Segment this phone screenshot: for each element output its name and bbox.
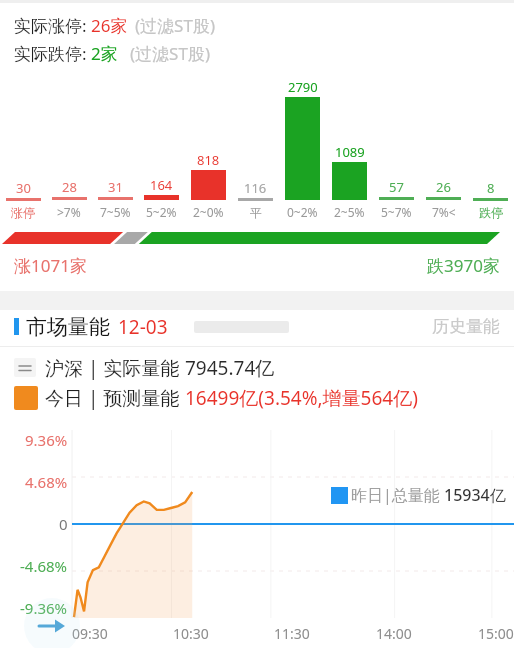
staticText: 今日 | 预测量能 <box>45 385 185 411</box>
button[interactable]: 9.36% <box>0 416 514 648</box>
staticText: 8 <box>487 179 495 197</box>
staticText: 12-03 <box>118 314 168 340</box>
staticText: 历史量能 <box>432 316 500 337</box>
staticText: 11:30 <box>274 624 310 643</box>
staticText: 5~2% <box>146 204 177 220</box>
staticText: 平 <box>250 205 262 220</box>
button[interactable]: 实际涨停: <box>14 14 514 37</box>
staticText: 116 <box>244 179 267 197</box>
button[interactable]: 展开 <box>24 598 80 648</box>
staticText: 30 <box>16 179 31 197</box>
other: 切换市场 <box>14 358 36 377</box>
staticText: (过滤ST股) <box>135 14 215 37</box>
staticText: 16499亿(3.54%,增量564亿) <box>185 385 418 411</box>
staticText: 26 <box>436 178 451 196</box>
staticText: 2家 <box>91 42 118 65</box>
staticText: 跌3970家 <box>427 254 500 277</box>
staticText: 4.68% <box>25 472 68 492</box>
staticText: 7945.74亿 <box>185 355 275 381</box>
staticText: 涨1071家 <box>14 254 87 277</box>
staticText: 沪深 | 实际量能 <box>45 355 185 381</box>
staticText: 15:00 <box>478 624 514 643</box>
staticText: -4.68% <box>20 556 68 576</box>
staticText: 1089 <box>335 143 365 161</box>
staticText: 14:00 <box>376 624 412 643</box>
staticText: 7%< <box>432 204 456 220</box>
button[interactable]: 切换市场 <box>14 354 514 381</box>
staticText: 15934亿 <box>444 484 506 506</box>
button[interactable]: 市场量能 <box>0 310 514 343</box>
staticText: 57 <box>389 178 404 196</box>
staticText: 2790 <box>288 78 318 96</box>
staticText: 0 <box>59 514 68 534</box>
staticText: >7% <box>57 204 81 220</box>
staticText: 2~0% <box>193 204 224 220</box>
staticText: 5~7% <box>381 204 412 220</box>
staticText: 7~5% <box>100 204 131 220</box>
staticText: 涨停 <box>11 205 35 220</box>
staticText: 跌停 <box>479 205 503 220</box>
staticText: (过滤ST股) <box>130 42 210 65</box>
staticText: 实际跌停: <box>14 42 91 65</box>
button[interactable] <box>0 230 514 248</box>
staticText: 10:30 <box>173 624 209 643</box>
staticText: 28 <box>62 178 77 196</box>
staticText: 市场量能 <box>26 314 110 340</box>
staticText: 26家 <box>91 14 128 37</box>
staticText: -9.36% <box>20 598 68 618</box>
staticText: 昨日|总量能 <box>351 484 444 506</box>
staticText: 818 <box>197 151 220 169</box>
staticText: 31 <box>108 178 123 196</box>
button[interactable]: 30 <box>0 74 514 222</box>
staticText: 2~5% <box>334 204 365 220</box>
button[interactable]: 今日 | 预测量能 <box>14 384 514 411</box>
staticText: 164 <box>150 176 173 194</box>
staticText: 09:30 <box>72 624 108 643</box>
staticText: 实际涨停: <box>14 14 91 37</box>
button[interactable]: 实际跌停: <box>14 42 514 65</box>
staticText: 9.36% <box>25 430 68 450</box>
staticText: 0~2% <box>287 204 318 220</box>
